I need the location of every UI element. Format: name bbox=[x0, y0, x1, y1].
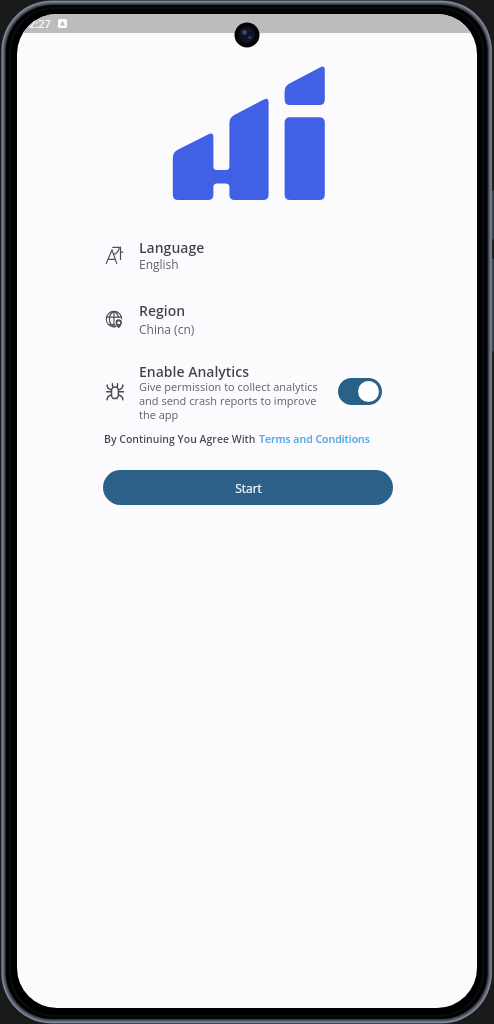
staticText: Language bbox=[139, 238, 205, 257]
button[interactable]: Language bbox=[105, 239, 425, 279]
button[interactable]: Terms and Conditions bbox=[259, 432, 370, 446]
button[interactable]: Enable Analytics toggle bbox=[338, 378, 382, 405]
staticText: Enable Analytics bbox=[139, 362, 250, 381]
staticText: Give permission to collect analytics and… bbox=[139, 379, 325, 422]
button[interactable]: Region bbox=[105, 303, 425, 343]
staticText: By Continuing You Agree With bbox=[104, 432, 259, 446]
staticText: Start bbox=[235, 480, 262, 496]
button[interactable]: Start bbox=[103, 470, 393, 505]
staticText: 2:27 bbox=[29, 16, 51, 31]
staticText: Region bbox=[139, 301, 186, 320]
staticText: English bbox=[139, 256, 179, 272]
staticText: Terms and Conditions bbox=[259, 432, 370, 446]
staticText: China (cn) bbox=[139, 321, 195, 337]
